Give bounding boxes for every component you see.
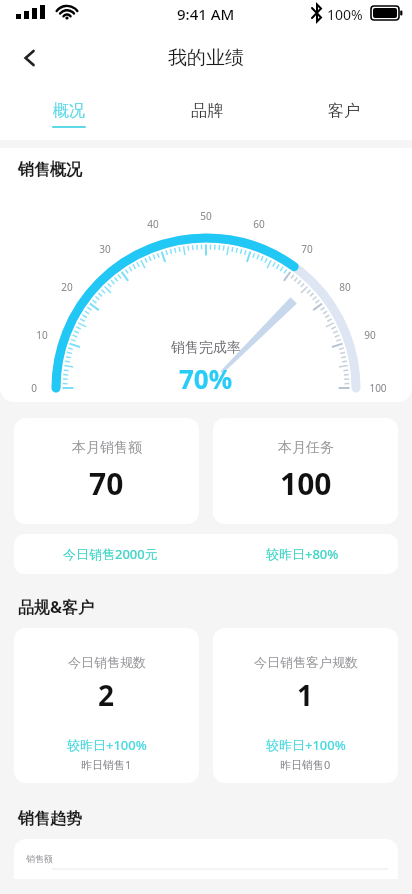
button[interactable]: Back (8, 36, 52, 80)
staticText: 销售趋势 (18, 809, 82, 829)
staticText: 80 (339, 280, 351, 294)
staticText: 2 (98, 676, 115, 714)
staticText: 销售概况 (18, 160, 82, 180)
staticText: 销售完成率 (171, 339, 241, 357)
staticText: 70% (179, 361, 233, 396)
staticText: 概况 (53, 101, 85, 121)
staticText: 今日销售2000元 (63, 545, 158, 563)
staticText: 0 (31, 381, 37, 395)
button[interactable]: 今日销售规数 (14, 628, 199, 783)
staticText: 较昨日+100% (266, 736, 346, 754)
button[interactable]: 今日销售客户规数 (213, 628, 398, 783)
button[interactable]: 概况 (0, 88, 138, 140)
staticText: 较昨日+80% (266, 545, 339, 563)
staticText: 1 (297, 676, 314, 714)
staticText: 9:41 AM (177, 4, 235, 24)
staticText: 销售额 (26, 853, 53, 864)
staticText: 品规&客户 (18, 596, 95, 618)
button[interactable]: 今日销售2000元 (14, 534, 398, 574)
staticText: 60 (253, 217, 265, 231)
staticText: 50 (200, 209, 212, 223)
staticText: 70 (301, 242, 313, 256)
button[interactable]: 本月任务 (213, 418, 398, 524)
staticText: 70 (89, 463, 124, 504)
staticText: 较昨日+100% (67, 736, 147, 754)
staticText: 本月销售额 (72, 439, 142, 457)
staticText: 20 (61, 280, 73, 294)
staticText: 本月任务 (278, 439, 334, 457)
staticText: 客户 (328, 101, 360, 121)
staticText: 90 (364, 328, 376, 342)
staticText: 昨日销售0 (280, 757, 331, 772)
staticText: 100 (280, 463, 332, 504)
staticText: 品牌 (191, 101, 223, 121)
staticText: 100 (369, 381, 387, 395)
button[interactable]: 客户 (275, 88, 412, 140)
staticText: 今日销售客户规数 (254, 654, 358, 670)
staticText: 昨日销售1 (81, 757, 132, 772)
button[interactable]: 本月销售额 (14, 418, 199, 524)
staticText: 10 (36, 328, 48, 342)
button[interactable]: 品牌 (138, 88, 275, 140)
staticText: 今日销售规数 (68, 654, 146, 670)
staticText: 30 (99, 242, 111, 256)
staticText: 我的业绩 (168, 46, 244, 70)
staticText: 40 (147, 217, 159, 231)
staticText: 100% (327, 5, 363, 24)
